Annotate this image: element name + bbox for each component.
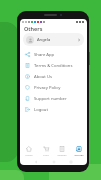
staticText: Terms & Conditions	[34, 63, 73, 69]
button[interactable]: CART	[38, 144, 53, 158]
button[interactable]: Support number	[20, 93, 87, 104]
button[interactable]: Angela	[23, 33, 84, 46]
button[interactable]: OTHERS	[71, 144, 86, 158]
button[interactable]: Share App	[20, 49, 87, 60]
button[interactable]: Home	[52, 160, 56, 164]
button[interactable]: ORDERS	[54, 144, 69, 158]
button[interactable]: Terms & Conditions	[20, 60, 87, 71]
staticText: CART	[43, 153, 49, 156]
staticText: Privacy Policy	[34, 85, 61, 91]
staticText: HOME	[25, 153, 33, 156]
staticText: Support number	[34, 96, 67, 102]
staticText: OTHERS	[74, 153, 84, 156]
button[interactable]: Back	[34, 160, 38, 164]
button[interactable]: HOME	[21, 144, 36, 158]
staticText: About Us	[34, 74, 53, 80]
button[interactable]: Logout	[20, 104, 87, 115]
button[interactable]: Privacy Policy	[20, 82, 87, 93]
staticText: Logout	[34, 107, 48, 113]
button[interactable]: Recents	[69, 160, 73, 164]
staticText: Others	[24, 25, 43, 32]
staticText: Angela	[37, 37, 51, 42]
button[interactable]: About Us	[20, 71, 87, 82]
staticText: ORDERS	[57, 153, 67, 156]
staticText: Share App	[34, 52, 55, 58]
